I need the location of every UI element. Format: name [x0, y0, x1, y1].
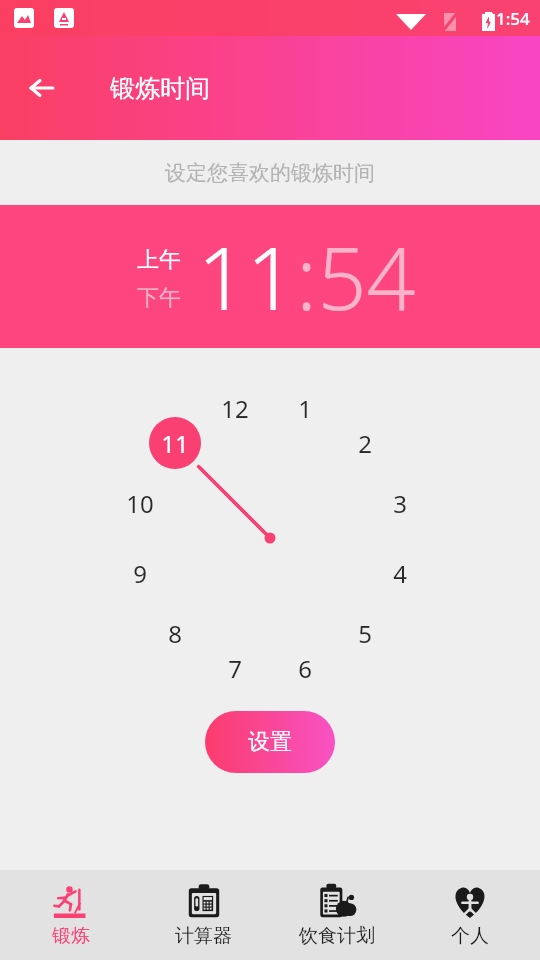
button[interactable]: 11 — [197, 218, 296, 335]
button[interactable]: 饮食计划 — [274, 877, 399, 954]
button[interactable]: 2 — [339, 417, 391, 469]
staticText: 设定您喜欢的锻炼时间 — [165, 160, 375, 186]
staticText: 饮食计划 — [299, 924, 375, 948]
button[interactable]: 锻炼 — [8, 877, 133, 954]
staticText: 11 — [197, 218, 296, 335]
button[interactable]: 9 — [114, 547, 166, 599]
button[interactable]: 设置 — [205, 711, 335, 773]
button[interactable]: 返回 — [18, 64, 66, 112]
button[interactable]: 3 — [374, 477, 426, 529]
staticText: 设置 — [248, 728, 292, 756]
button[interactable]: 1 — [279, 382, 331, 434]
staticText: 1 — [298, 392, 312, 425]
button[interactable]: 上午 — [135, 245, 183, 275]
staticText: 锻炼时间 — [110, 73, 210, 104]
staticText: 8 — [168, 617, 182, 650]
staticText: 个人 — [451, 924, 489, 948]
staticText: 4 — [393, 557, 407, 590]
staticText: 7 — [228, 652, 242, 685]
staticText: 3 — [393, 487, 407, 520]
button[interactable]: 计算器 — [141, 877, 266, 954]
staticText: 10 — [126, 487, 154, 520]
button[interactable]: 5 — [339, 607, 391, 659]
staticText: : — [296, 218, 317, 335]
staticText: 11 — [161, 427, 189, 460]
staticText: 2 — [358, 427, 372, 460]
staticText: 9 — [133, 557, 147, 590]
staticText: 11:54 — [486, 7, 530, 30]
button[interactable]: 6 — [279, 642, 331, 694]
button[interactable]: 7 — [209, 642, 261, 694]
button[interactable]: 个人 — [407, 877, 532, 954]
button[interactable]: 54 — [317, 218, 416, 335]
staticText: 12 — [221, 392, 249, 425]
button[interactable]: 10 — [114, 477, 166, 529]
staticText: 下午 — [137, 284, 181, 312]
button[interactable]: 8 — [149, 607, 201, 659]
staticText: 锻炼 — [52, 924, 90, 948]
staticText: 6 — [298, 652, 312, 685]
button[interactable]: 12 — [209, 382, 261, 434]
button[interactable]: 下午 — [135, 283, 183, 313]
button[interactable]: 4 — [374, 547, 426, 599]
staticText: 上午 — [137, 246, 181, 274]
staticText: 54 — [317, 218, 416, 335]
button[interactable]: 11 — [149, 417, 201, 469]
staticText: 5 — [358, 617, 372, 650]
staticText: 计算器 — [175, 924, 232, 948]
